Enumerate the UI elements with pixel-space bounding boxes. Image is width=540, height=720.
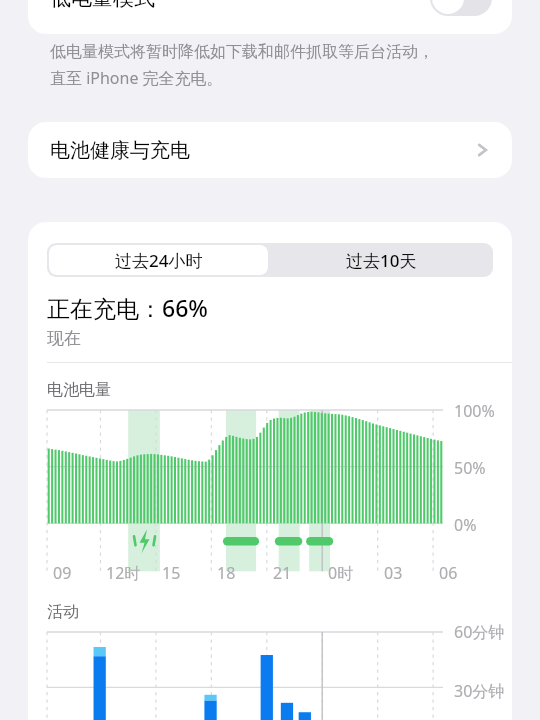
staticText: 电池健康与充电 — [50, 138, 474, 163]
staticText: 0% — [454, 514, 477, 536]
staticText: 低电量模式 — [50, 0, 430, 11]
staticText: 电池电量 — [47, 380, 111, 400]
button[interactable]: 过去24小时 — [49, 245, 268, 275]
staticText: 12时 — [106, 562, 141, 584]
staticText: 06 — [439, 562, 458, 584]
button[interactable]: 低电量模式 — [28, 0, 512, 34]
staticText: 18 — [217, 562, 236, 584]
staticText: 过去10天 — [346, 249, 417, 272]
staticText: 30分钟 — [454, 680, 505, 702]
button[interactable]: 低电量模式 开关 — [430, 0, 492, 16]
staticText: 0时 — [328, 562, 354, 584]
button[interactable]: 电池健康与充电 — [28, 122, 512, 178]
staticText: 过去24小时 — [115, 249, 203, 272]
staticText: 60分钟 — [454, 621, 505, 643]
staticText: 正在充电：66% — [47, 292, 208, 323]
staticText: 15 — [162, 562, 181, 584]
staticText: 50% — [454, 457, 486, 479]
button[interactable]: 过去10天 — [270, 243, 493, 277]
staticText: 09 — [53, 562, 72, 584]
staticText: 03 — [384, 562, 403, 584]
staticText: 低电量模式将暂时降低如下载和邮件抓取等后台活动， — [50, 42, 434, 62]
staticText: 现在 — [47, 328, 81, 349]
staticText: 21 — [273, 562, 292, 584]
staticText: 活动 — [47, 602, 79, 622]
staticText: 直至 iPhone 完全充电。 — [50, 67, 223, 89]
staticText: 100% — [454, 400, 495, 422]
